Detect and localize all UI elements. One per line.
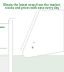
staticText: Obtain the latest news from the market, …	[1, 3, 63, 10]
